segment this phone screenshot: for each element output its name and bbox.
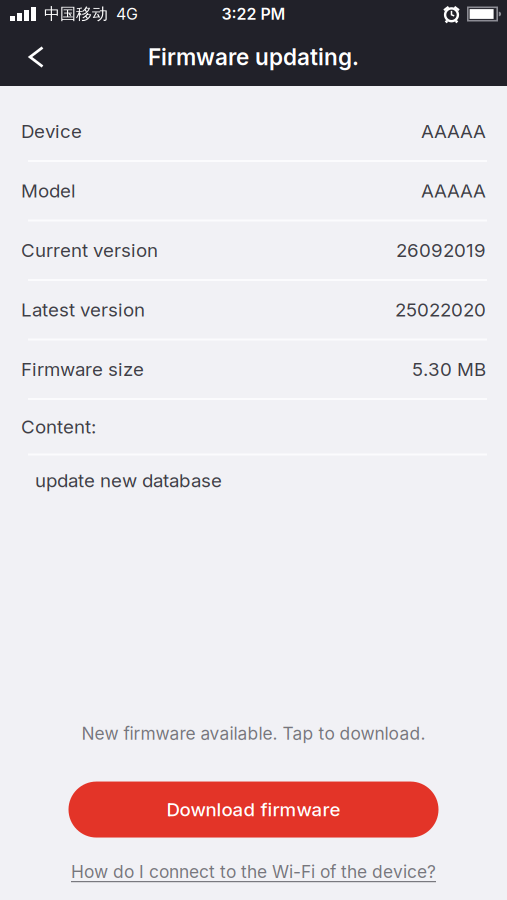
staticText: 4G <box>116 5 138 23</box>
staticText: Firmware updating. <box>148 44 359 70</box>
staticText: Latest version <box>21 299 145 321</box>
staticText: Current version <box>21 239 158 261</box>
button[interactable]: How do I connect to the Wi-Fi of the dev… <box>71 862 436 882</box>
staticText: 26092019 <box>396 239 486 261</box>
button[interactable]: Back <box>0 28 61 86</box>
staticText: update new database <box>35 469 222 491</box>
staticText: 25022020 <box>395 299 486 321</box>
staticText: Download firmware <box>166 798 340 820</box>
staticText: 中国移动 <box>44 4 108 24</box>
staticText: AAAAA <box>421 180 486 202</box>
button[interactable]: Download firmware <box>68 782 438 838</box>
staticText: 5.30 MB <box>412 358 486 380</box>
staticText: 3:22 PM <box>221 5 285 23</box>
staticText: Content: <box>21 416 96 438</box>
staticText: How do I connect to the Wi-Fi of the dev… <box>71 862 436 882</box>
staticText: Firmware size <box>21 358 144 380</box>
staticText: New firmware available. Tap to download. <box>81 723 425 743</box>
staticText: AAAAA <box>421 120 486 142</box>
staticText: Model <box>21 180 76 202</box>
staticText: Device <box>21 120 82 142</box>
